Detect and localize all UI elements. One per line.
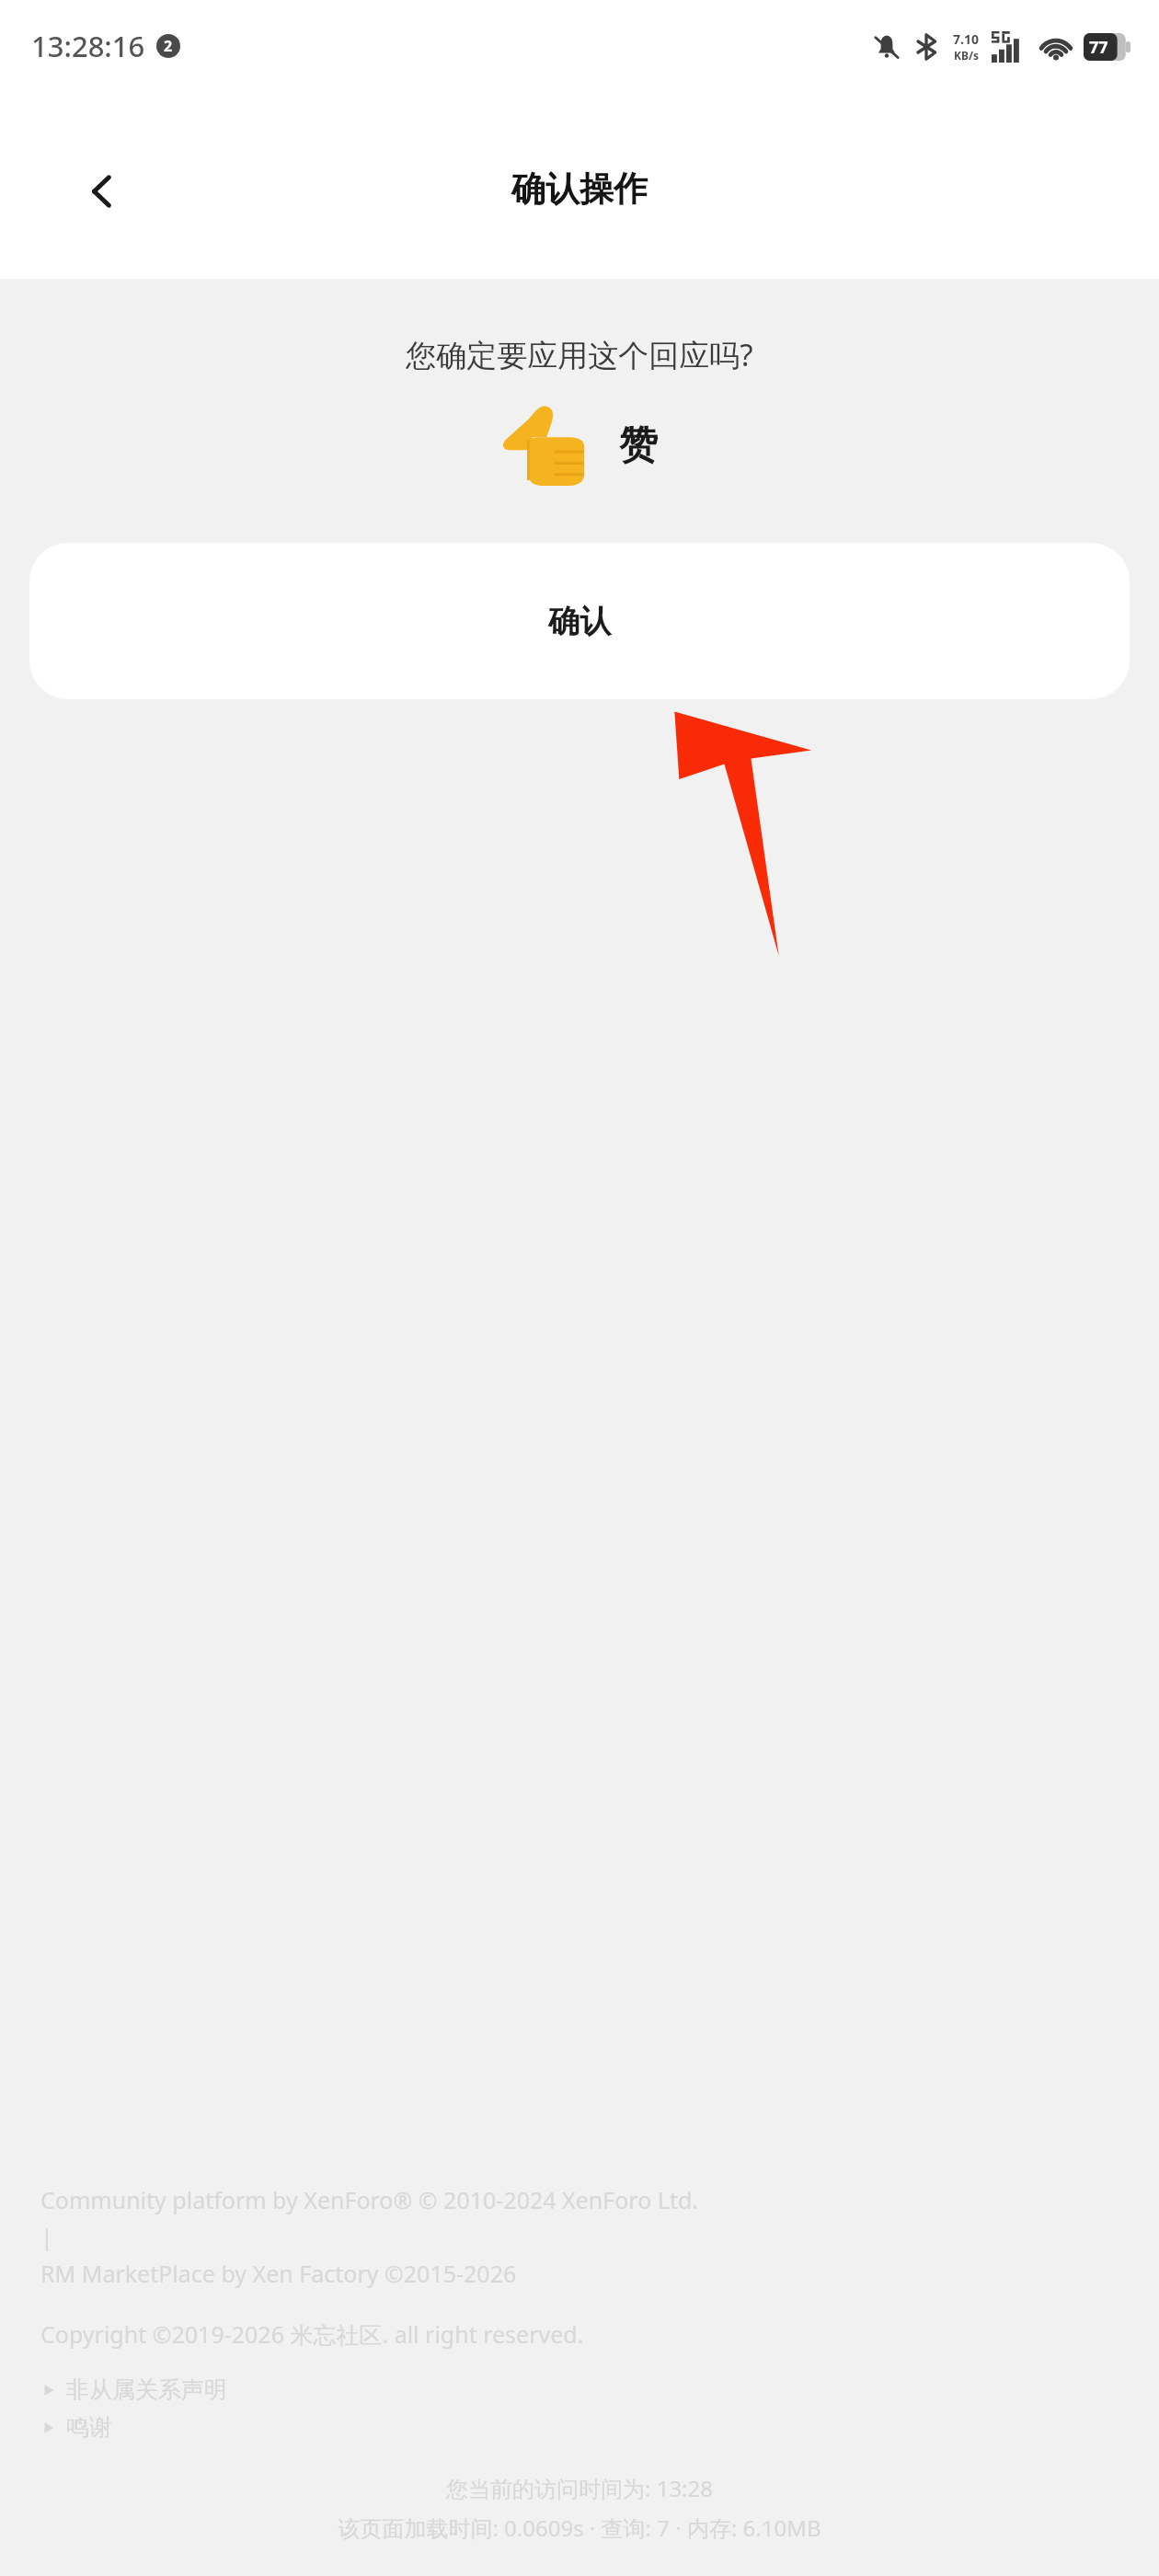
staticText: 2 [164, 36, 173, 56]
staticText: 7.10 [953, 30, 979, 48]
staticText: 确认操作 [511, 167, 648, 211]
button[interactable]: 确认 [29, 543, 1130, 699]
staticText: 77 [1089, 36, 1108, 59]
staticText: Copyright ©2019-2026 米忘社区. all right res… [40, 2318, 584, 2350]
staticText: 该页面加载时间: 0.0609s · 查询: 7 · 内存: 6.10MB [0, 2513, 1159, 2543]
button[interactable]: 鸣谢 [40, 2411, 112, 2444]
staticText: 您确定要应用这个回应吗? [0, 334, 1159, 375]
staticText: 您当前的访问时间为: 13:28 [0, 2473, 1159, 2503]
button[interactable]: 非从属关系声明 [40, 2374, 227, 2406]
staticText: 确认 [548, 602, 611, 641]
button[interactable]: Back [57, 147, 145, 236]
staticText: | [40, 2221, 53, 2252]
staticText: 13:28:16 [31, 27, 145, 65]
staticText: Community platform by XenForo® © 2010-20… [40, 2184, 698, 2215]
staticText: 鸣谢 [66, 2413, 112, 2442]
staticText: 非从属关系声明 [66, 2375, 227, 2404]
staticText: RM MarketPlace by Xen Factory ©2015-2026 [40, 2258, 517, 2289]
staticText: 赞 [619, 421, 658, 470]
staticText: KB/s [954, 48, 979, 63]
